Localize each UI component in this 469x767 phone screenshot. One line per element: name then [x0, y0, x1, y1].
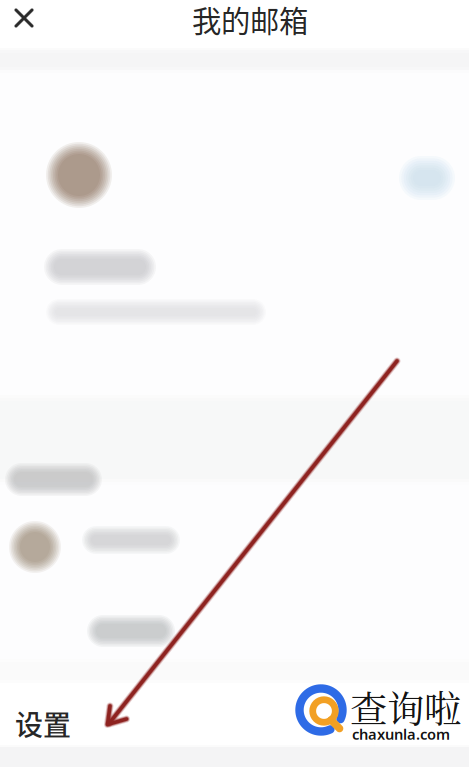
staticText: 我的邮箱 [192, 0, 308, 40]
staticText: 查询啦 [350, 680, 461, 734]
staticText: 设置 [15, 703, 71, 743]
button[interactable]: 设置 [0, 694, 86, 752]
button[interactable]: Close [2, 0, 46, 38]
staticText: chaxunla.com [352, 724, 450, 744]
